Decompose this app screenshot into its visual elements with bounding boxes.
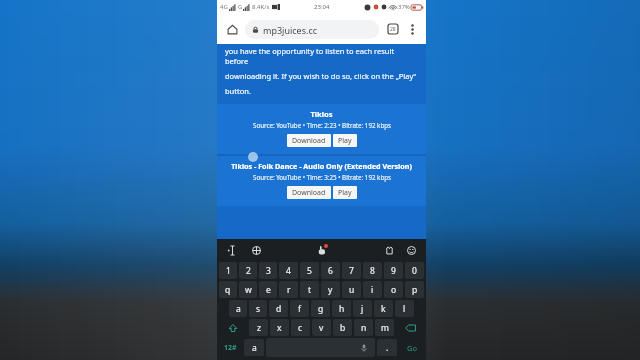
staticText: 4G [220, 3, 228, 11]
button[interactable]: Text cursor [225, 243, 239, 257]
button[interactable]: p [405, 281, 424, 298]
button[interactable]: g [311, 300, 330, 317]
staticText: 0 [412, 265, 417, 277]
button[interactable]: x [270, 319, 289, 336]
staticText: z [257, 322, 261, 334]
button[interactable]: Go [399, 338, 424, 357]
staticText: 37% [398, 3, 410, 11]
staticText: 4 [286, 265, 291, 277]
staticText: Tiklos - Folk Dance - Audio Only (Extend… [231, 161, 412, 171]
button[interactable]: 3 [259, 262, 277, 279]
button[interactable]: v [312, 319, 331, 336]
button[interactable]: Home [222, 19, 242, 39]
button[interactable]: f [290, 300, 309, 317]
staticText: Play [338, 188, 352, 198]
button[interactable]: c [291, 319, 310, 336]
staticText: Download [292, 136, 326, 146]
button[interactable]: d [269, 300, 288, 317]
staticText: k [381, 303, 386, 315]
button[interactable]: 7 [342, 262, 361, 279]
staticText: f [298, 303, 301, 315]
button[interactable]: 1 [219, 262, 237, 279]
staticText: u [349, 284, 355, 296]
button[interactable]: 2 [239, 262, 257, 279]
staticText: s [256, 303, 261, 315]
staticText: you have the opportunity to listen to ea… [225, 46, 418, 66]
staticText: q [225, 284, 231, 296]
staticText: Play [338, 136, 352, 146]
button[interactable]: m [375, 319, 394, 336]
staticText: c [298, 322, 303, 334]
button[interactable]: l [395, 300, 414, 317]
button[interactable]: j [353, 300, 372, 317]
button[interactable]: y [321, 281, 340, 298]
button[interactable]: w [239, 281, 257, 298]
button[interactable]: 5 [300, 262, 319, 279]
button[interactable]: More options [403, 20, 421, 38]
staticText: 8.4K/s [252, 3, 270, 11]
staticText: 28 [390, 26, 396, 33]
staticText: e [266, 284, 271, 296]
button[interactable]: Language [249, 243, 263, 257]
button[interactable]: Emoji [404, 243, 418, 257]
button[interactable]: k [374, 300, 393, 317]
staticText: 2 [246, 265, 251, 277]
staticText: a [252, 342, 257, 354]
button[interactable]: r [279, 281, 298, 298]
button[interactable]: Themes [382, 243, 396, 257]
staticText: 7 [349, 265, 354, 277]
button[interactable]: h [332, 300, 351, 317]
button[interactable]: 8 [363, 262, 382, 279]
button[interactable]: . [377, 339, 397, 356]
button[interactable]: a [229, 300, 247, 317]
button[interactable]: Shift [219, 319, 247, 336]
button[interactable]: a [244, 339, 264, 356]
staticText: 8 [370, 265, 375, 277]
button[interactable]: Tabs [383, 19, 403, 39]
button[interactable]: 0 [405, 262, 424, 279]
staticText: Tiklos [310, 109, 333, 119]
staticText: 3 [266, 265, 271, 277]
staticText: Source: YouTube • Time: 3:25 • Bitrate: … [253, 173, 391, 181]
staticText: n [361, 322, 367, 334]
staticText: downloading it. If you wish to do so, cl… [225, 71, 416, 81]
button[interactable]: t [300, 281, 319, 298]
button[interactable]: 4 [279, 262, 298, 279]
staticText: m [381, 322, 389, 334]
button[interactable]: z [249, 319, 268, 336]
staticText: r [287, 284, 291, 296]
button[interactable]: u [342, 281, 361, 298]
staticText: g [318, 303, 324, 315]
staticText: t [308, 284, 312, 296]
button[interactable]: Download [287, 134, 331, 147]
button[interactable]: Backspace [396, 319, 424, 336]
staticText: Source: YouTube • Time: 2:23 • Bitrate: … [253, 121, 391, 129]
staticText: y [328, 284, 333, 296]
staticText: G [238, 3, 243, 11]
button[interactable]: o [384, 281, 403, 298]
button[interactable]: 12# [219, 338, 242, 357]
staticText: 9 [391, 265, 396, 277]
staticText: h [339, 303, 345, 315]
button[interactable]: 9 [384, 262, 403, 279]
button[interactable]: b [333, 319, 352, 336]
button[interactable]: q [219, 281, 237, 298]
button[interactable]: Play [333, 134, 357, 147]
button[interactable]: e [259, 281, 277, 298]
staticText: Download [292, 188, 326, 198]
staticText: b [340, 322, 346, 334]
button[interactable]: i [363, 281, 382, 298]
staticText: i [371, 284, 374, 296]
button[interactable]: Play [333, 186, 357, 199]
staticText: w [245, 284, 252, 296]
button[interactable]: Download [287, 186, 331, 199]
button[interactable]: Clipboard [315, 243, 329, 257]
button[interactable]: n [354, 319, 373, 336]
staticText: 12# [224, 343, 237, 353]
staticText: v [319, 322, 324, 334]
button[interactable]: s [249, 300, 267, 317]
button[interactable]: mp3juices.cc [245, 20, 379, 39]
button[interactable]: Space [266, 338, 375, 357]
button[interactable]: 6 [321, 262, 340, 279]
staticText: mp3juices.cc [263, 24, 318, 36]
